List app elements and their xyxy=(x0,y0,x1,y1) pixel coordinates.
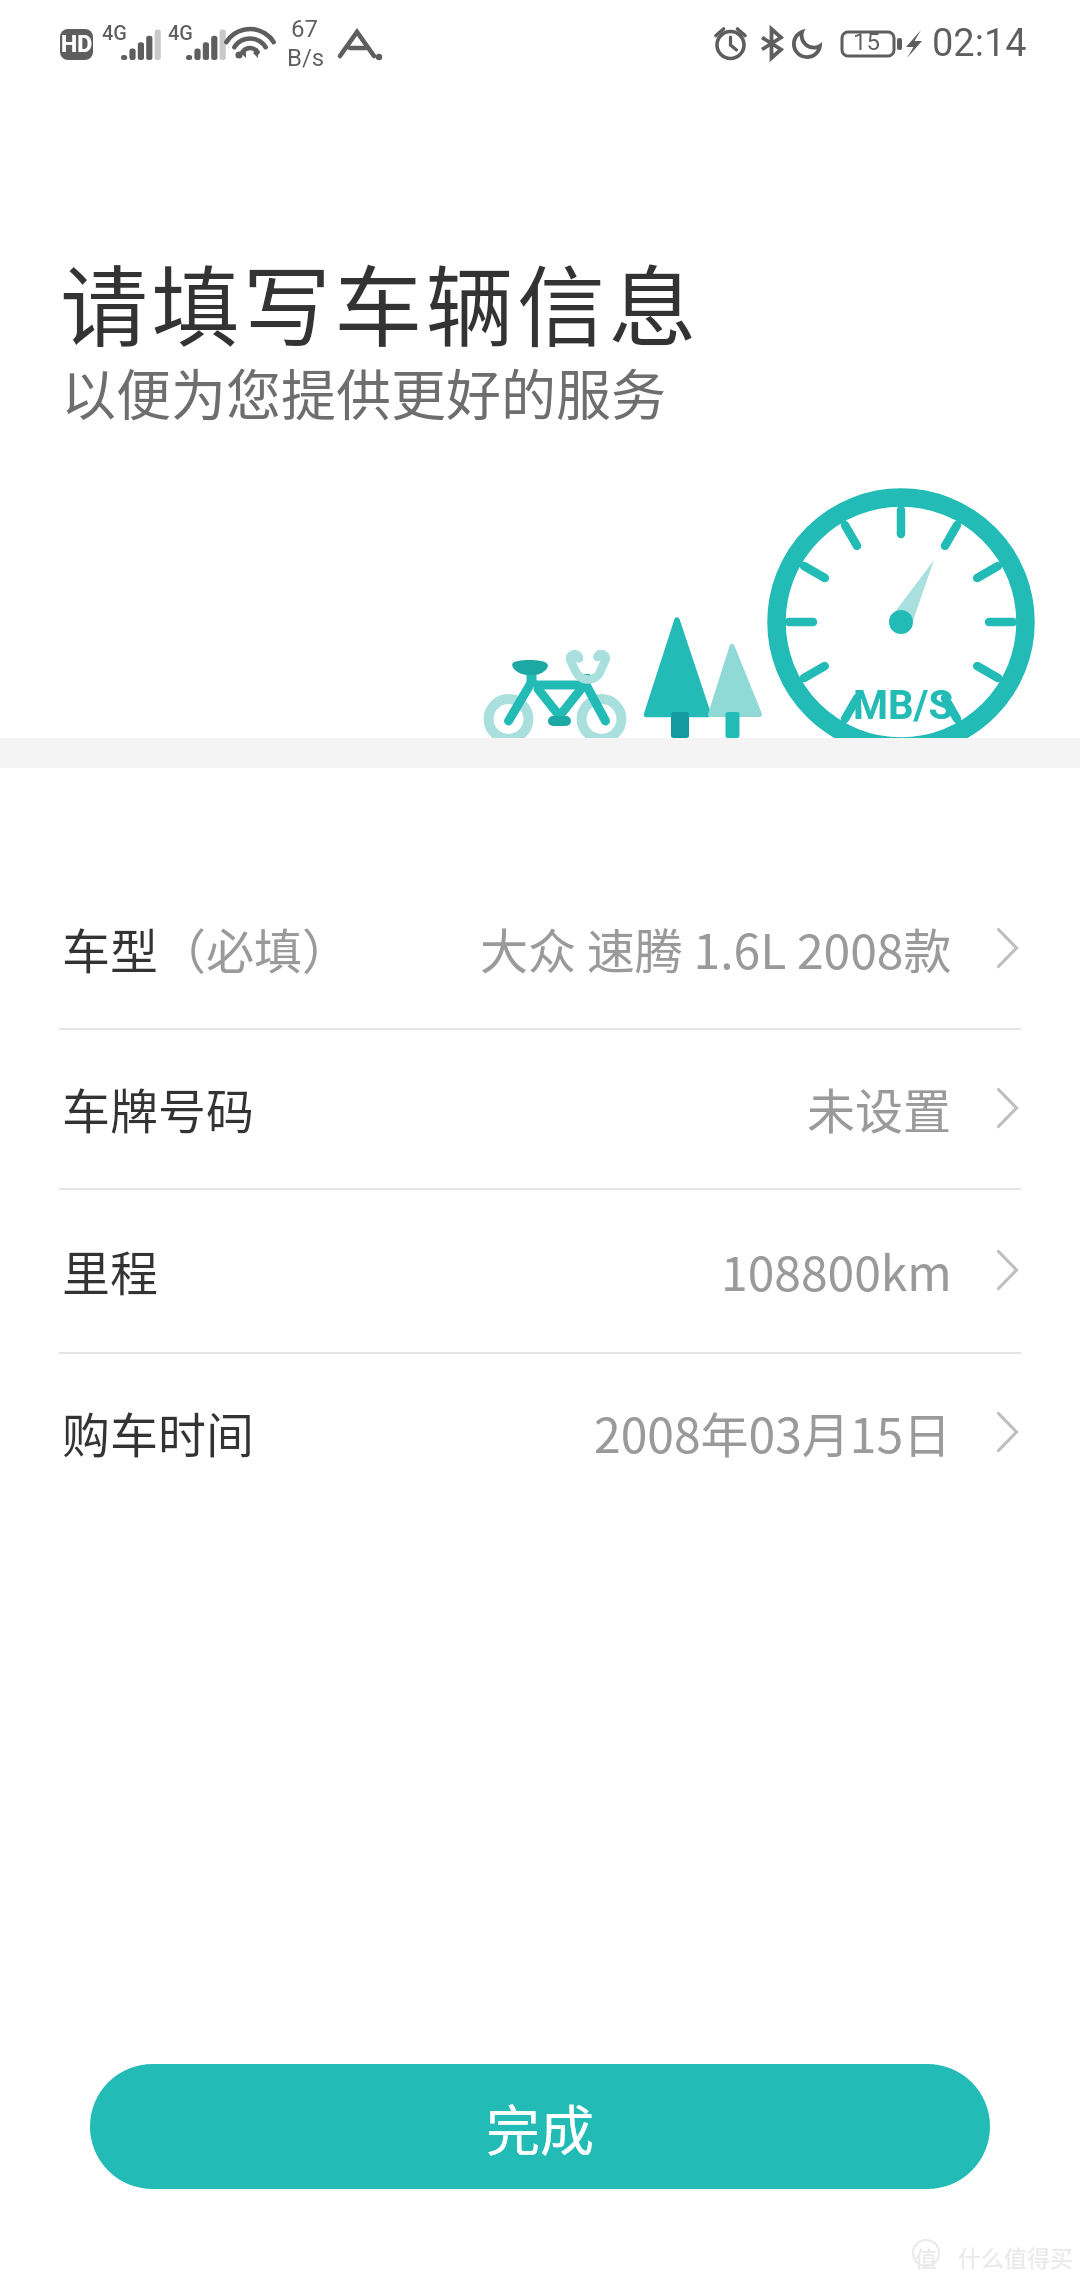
staticText: 4G xyxy=(168,21,193,44)
button[interactable]: 完成 xyxy=(90,2064,990,2189)
button[interactable]: 购车时间 xyxy=(0,1352,1080,1512)
staticText: 车型（必填） xyxy=(62,913,351,983)
button[interactable]: 里程 xyxy=(0,1190,1080,1350)
staticText: 值 xyxy=(915,2241,938,2273)
staticText: 里程 xyxy=(62,1235,159,1305)
staticText: 请填写车辆信息 xyxy=(60,237,700,364)
staticText: 完成 xyxy=(486,2088,594,2166)
staticText: B/s xyxy=(287,44,325,72)
staticText: 购车时间 xyxy=(62,1397,255,1467)
staticText: 大众 速腾 1.6L 2008款 xyxy=(480,913,952,983)
staticText: 02:14 xyxy=(932,21,1027,66)
staticText: 车牌号码 xyxy=(62,1073,255,1143)
staticText: 15 xyxy=(853,28,880,56)
staticText: HD xyxy=(61,31,93,58)
staticText: 2008年03月15日 xyxy=(594,1397,952,1467)
button[interactable]: 车型（必填） xyxy=(0,868,1080,1028)
staticText: 67 xyxy=(291,15,318,43)
staticText: 什么值得买 xyxy=(958,2240,1073,2273)
staticText: 未设置 xyxy=(807,1073,952,1143)
staticText: 4G xyxy=(102,21,127,44)
button[interactable]: 车牌号码 xyxy=(0,1028,1080,1188)
staticText: 108800km xyxy=(721,1235,952,1305)
staticText: 以便为您提供更好的服务 xyxy=(61,351,667,431)
staticText: MB/S xyxy=(853,682,954,729)
